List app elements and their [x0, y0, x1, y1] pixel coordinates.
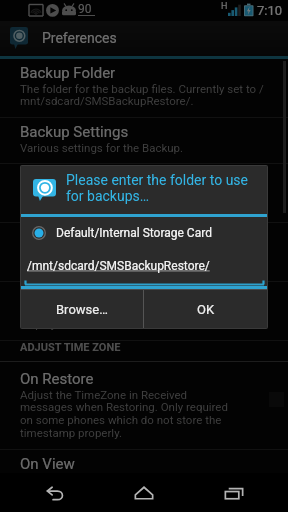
staticText: 7:10	[257, 3, 283, 18]
button[interactable]: Advanced	[0, 223, 288, 282]
staticText: Settings controlling how the messages ar…	[20, 305, 273, 331]
button[interactable]: OK	[144, 290, 267, 328]
staticText: ADJUST TIME ZONE	[20, 341, 121, 354]
staticText: Please enter the folder to use for backu…	[66, 172, 266, 204]
staticText: /mnt/sdcard/SMSBackupRestore/	[27, 259, 210, 273]
staticText: Default/Internal Storage Card	[56, 226, 212, 240]
button[interactable]: Display	[0, 282, 288, 341]
button[interactable]: Backup Folder	[0, 59, 288, 118]
button[interactable]: Restore	[0, 164, 288, 223]
button[interactable]: On View	[0, 450, 288, 483]
staticText: Adjust the TimeZone in Received messages…	[20, 388, 239, 440]
button[interactable]: Recent apps	[199, 473, 269, 512]
button[interactable]: Browse…	[21, 290, 143, 328]
button[interactable]: Default/Internal Storage Card	[32, 221, 267, 245]
button[interactable]: Back	[20, 473, 90, 512]
staticText: Settings for the Restore of the messages…	[20, 187, 273, 213]
staticText: Backup Settings	[20, 123, 129, 141]
staticText: Display	[20, 287, 69, 305]
button[interactable]: Home	[109, 473, 179, 512]
staticText: Backup Folder	[20, 64, 116, 82]
staticText: The folder for the backup files. Current…	[20, 82, 273, 108]
staticText: On View	[20, 455, 75, 473]
staticText: 90	[78, 2, 92, 16]
button[interactable]: On Restore	[0, 365, 288, 450]
staticText: On Restore	[20, 370, 94, 388]
staticText: Restore	[20, 169, 72, 187]
staticText: Advanced	[20, 228, 87, 246]
staticText: Advanced settings for the Backup and Res…	[20, 246, 273, 272]
staticText: Various settings for the Backup.	[20, 141, 184, 154]
staticText: Browse…	[56, 302, 108, 317]
staticText: H	[221, 1, 228, 12]
staticText: Preferences	[42, 30, 117, 46]
staticText: OK	[197, 302, 215, 317]
button[interactable]: Backup Settings	[0, 118, 288, 164]
